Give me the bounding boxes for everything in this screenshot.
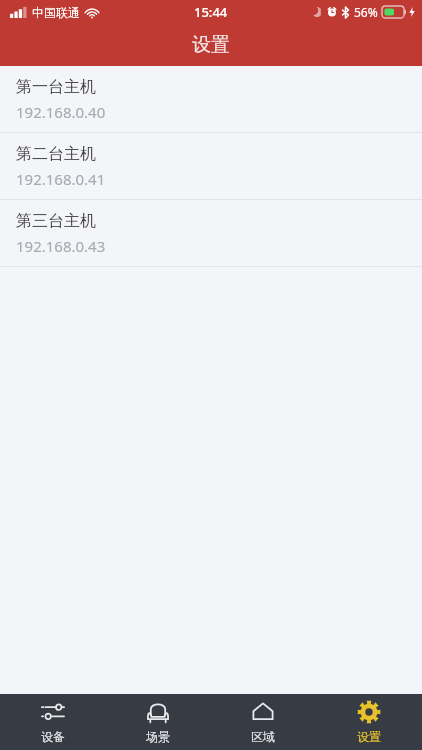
staticText: 192.168.0.41 [16,169,106,189]
staticText: 第三台主机 [16,211,96,231]
button[interactable]: 第三台主机 [0,200,422,266]
staticText: 56% [354,4,378,20]
staticText: 设置 [357,729,381,744]
staticText: 192.168.0.43 [16,236,106,256]
staticText: 第一台主机 [16,77,96,97]
staticText: 192.168.0.40 [16,102,106,122]
staticText: 设置 [192,33,230,57]
staticText: 15:44 [194,3,228,21]
button[interactable]: 第二台主机 [0,133,422,199]
staticText: 设备 [41,729,65,744]
staticText: 场景 [146,729,170,744]
button[interactable]: 第一台主机 [0,66,422,132]
staticText: 区域 [251,729,275,744]
staticText: 第二台主机 [16,144,96,164]
button[interactable]: 设置 [316,694,422,750]
button[interactable]: 场景 [105,694,210,750]
button[interactable]: 区域 [210,694,316,750]
staticText: 中国联通 [32,5,80,20]
button[interactable]: 设备 [0,694,105,750]
